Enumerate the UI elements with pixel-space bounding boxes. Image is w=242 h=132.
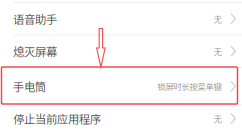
staticText: 手电筒: [13, 78, 46, 94]
staticText: 无: [213, 112, 221, 125]
button[interactable]: 手电筒: [0, 68, 242, 104]
staticText: 无: [213, 45, 221, 57]
staticText: 无: [213, 13, 221, 25]
button[interactable]: 停止当前应用程序: [0, 105, 242, 131]
button[interactable]: 熄灭屏幕: [0, 35, 242, 67]
staticText: 停止当前应用程序: [13, 110, 101, 127]
staticText: 锁屏时长按菜单键: [157, 80, 221, 92]
button[interactable]: 语音助手: [0, 3, 242, 34]
staticText: 语音助手: [13, 10, 57, 27]
staticText: 熄灭屏幕: [13, 43, 57, 59]
